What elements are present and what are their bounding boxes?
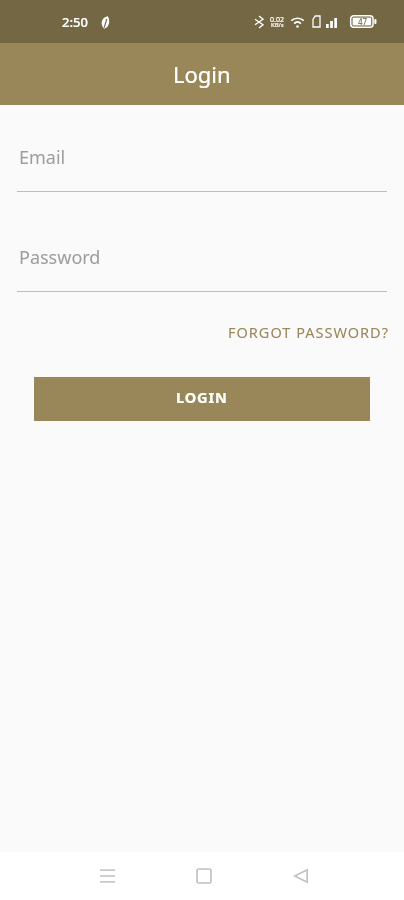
button[interactable]: LOGIN	[34, 377, 370, 421]
button[interactable]: Home	[175, 852, 232, 900]
button[interactable]: Password	[17, 236, 387, 292]
staticText: 2:50	[62, 13, 88, 31]
staticText: Login	[173, 59, 231, 89]
button[interactable]: FORGOT PASSWORD?	[228, 314, 389, 350]
staticText: FORGOT PASSWORD?	[228, 322, 389, 342]
staticText: 0.02	[270, 15, 284, 25]
staticText: 47	[358, 16, 368, 27]
button[interactable]: Email	[17, 136, 387, 192]
staticText: KB/s	[271, 21, 284, 29]
staticText: LOGIN	[176, 387, 228, 407]
staticText: Email	[19, 145, 66, 170]
button[interactable]: Recent apps	[79, 852, 136, 900]
staticText: Password	[19, 245, 101, 270]
button[interactable]: Back	[272, 852, 329, 900]
